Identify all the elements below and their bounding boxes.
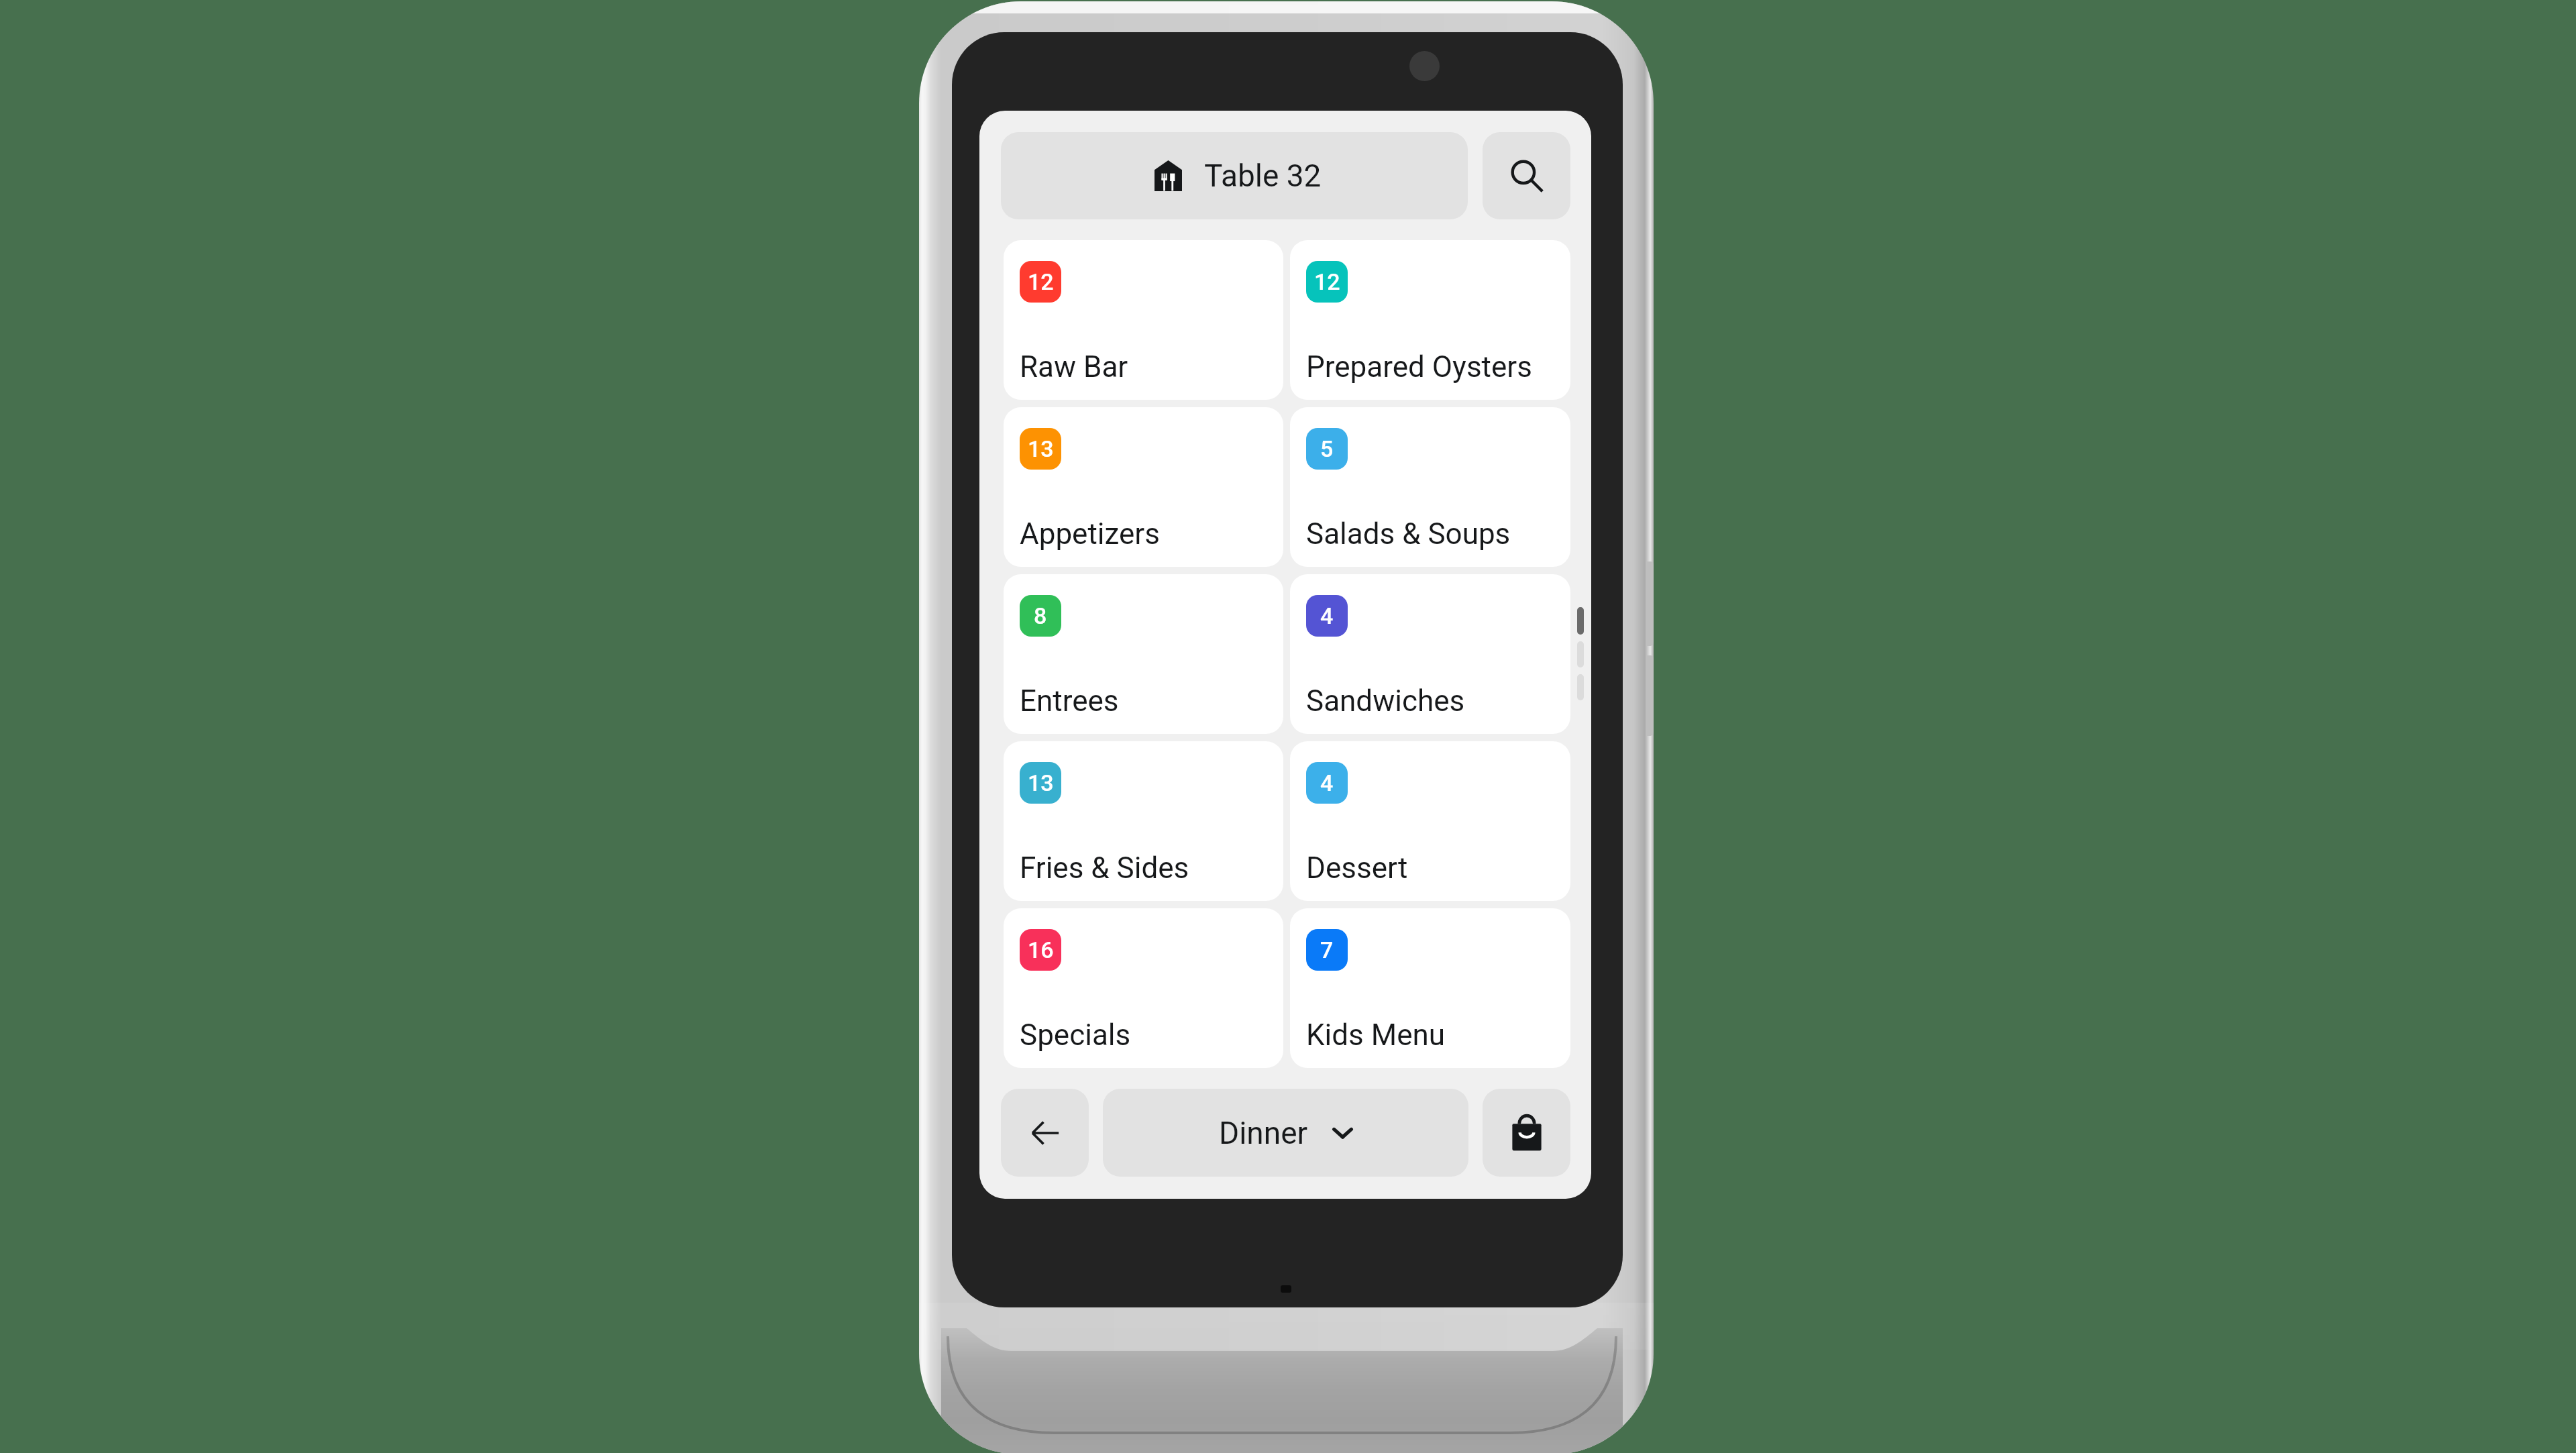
- staticText: Table 32: [1204, 158, 1322, 194]
- staticText: Kids Menu: [1306, 1018, 1446, 1053]
- staticText: Entrees: [1020, 684, 1119, 718]
- staticText: 12: [1028, 268, 1054, 295]
- button[interactable]: Search: [1483, 132, 1570, 219]
- staticText: Prepared Oysters: [1306, 349, 1532, 384]
- button[interactable]: 4: [1290, 741, 1570, 901]
- button[interactable]: 8: [1004, 574, 1283, 734]
- staticText: 5: [1320, 435, 1334, 462]
- staticText: 13: [1028, 769, 1054, 796]
- staticText: 7: [1320, 936, 1334, 963]
- staticText: Sandwiches: [1306, 684, 1465, 718]
- staticText: 8: [1034, 602, 1047, 629]
- button[interactable]: 5: [1290, 407, 1570, 567]
- button[interactable]: Table 32: [1001, 132, 1468, 219]
- staticText: 4: [1320, 602, 1334, 629]
- button[interactable]: 4: [1290, 574, 1570, 734]
- button[interactable]: 13: [1004, 407, 1283, 567]
- button[interactable]: 12: [1004, 240, 1283, 400]
- button[interactable]: 13: [1004, 741, 1283, 901]
- button[interactable]: Cart: [1483, 1089, 1570, 1177]
- button[interactable]: Back: [1001, 1089, 1089, 1177]
- staticText: 4: [1320, 769, 1334, 796]
- staticText: Raw Bar: [1020, 349, 1128, 384]
- button[interactable]: 16: [1004, 908, 1283, 1068]
- staticText: Dessert: [1306, 851, 1408, 885]
- staticText: Appetizers: [1020, 517, 1160, 551]
- staticText: 13: [1028, 435, 1054, 462]
- button[interactable]: 7: [1290, 908, 1570, 1068]
- staticText: Specials: [1020, 1018, 1131, 1053]
- staticText: Dinner: [1219, 1115, 1308, 1151]
- staticText: 16: [1028, 936, 1054, 963]
- staticText: Fries & Sides: [1020, 851, 1189, 885]
- button[interactable]: 12: [1290, 240, 1570, 400]
- staticText: Salads & Soups: [1306, 517, 1511, 551]
- staticText: 12: [1314, 268, 1340, 295]
- button[interactable]: Dinner: [1103, 1089, 1468, 1177]
